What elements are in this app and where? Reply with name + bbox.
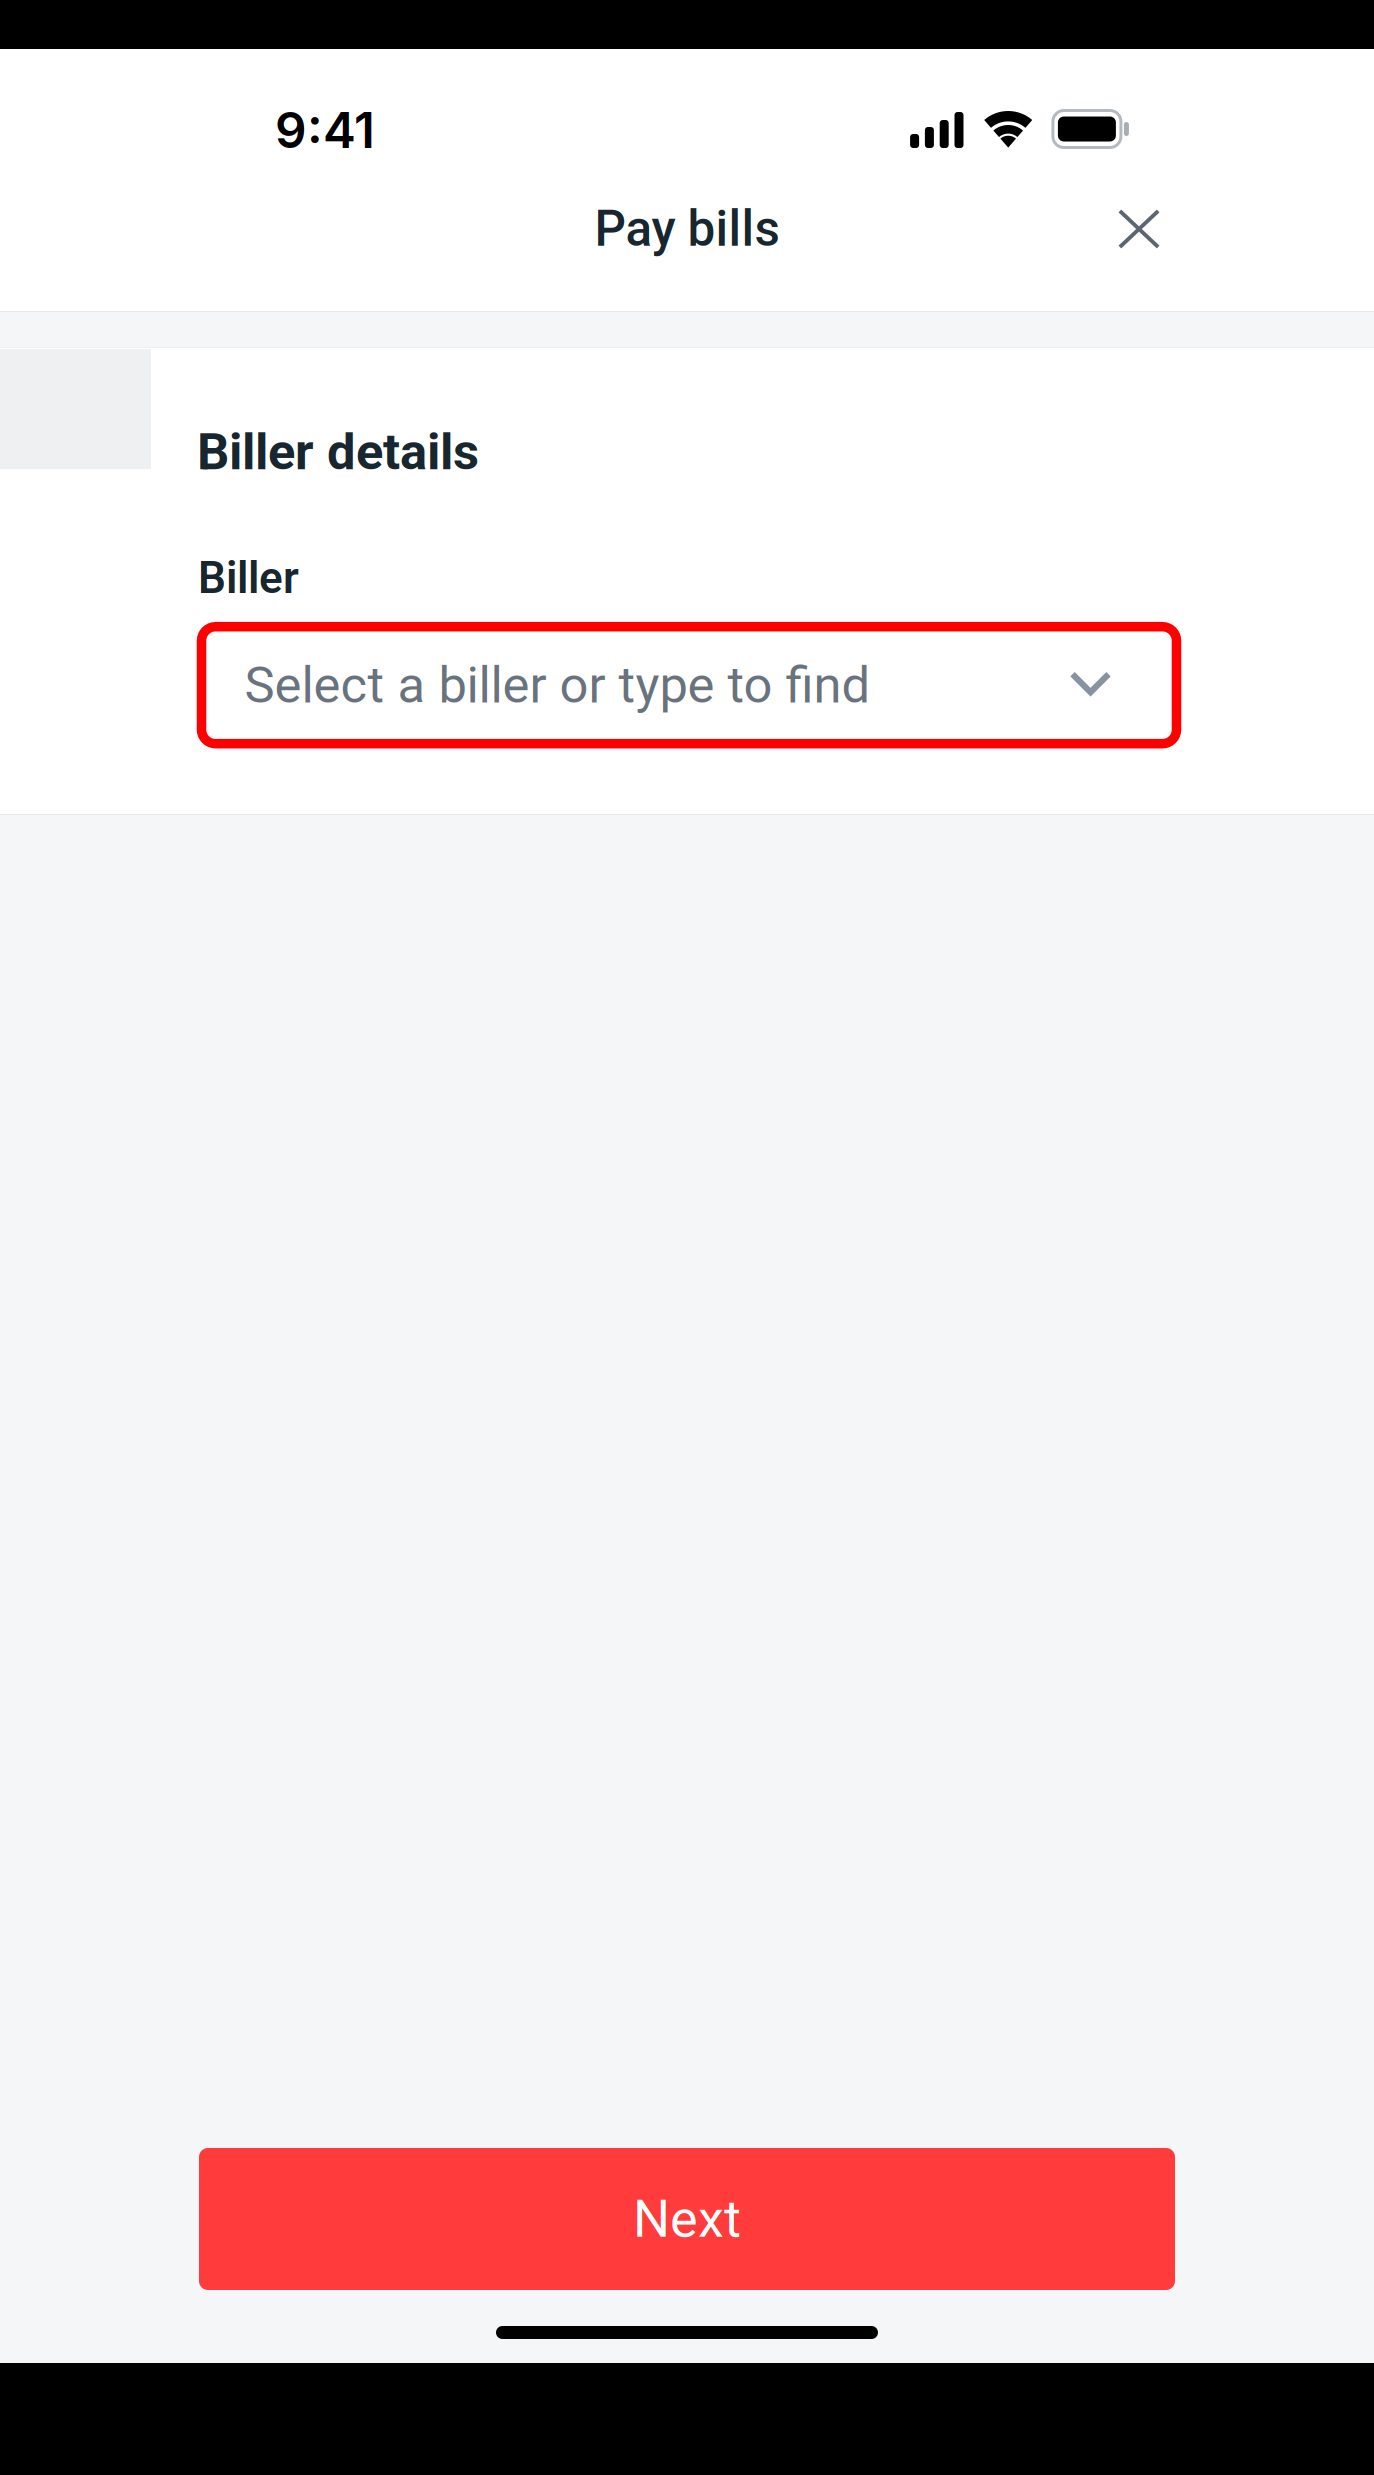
staticText: 9:41 [275,100,375,160]
staticText: Select a biller or type to find [244,655,870,715]
button[interactable]: Next [199,2148,1175,2290]
staticText: Next [633,2188,741,2249]
button[interactable]: Select a biller or type to find [201,627,1176,744]
staticText: Biller [198,552,299,604]
staticText: Biller details [197,422,479,482]
button[interactable]: Close [1083,173,1195,285]
staticText: Pay bills [594,200,779,258]
